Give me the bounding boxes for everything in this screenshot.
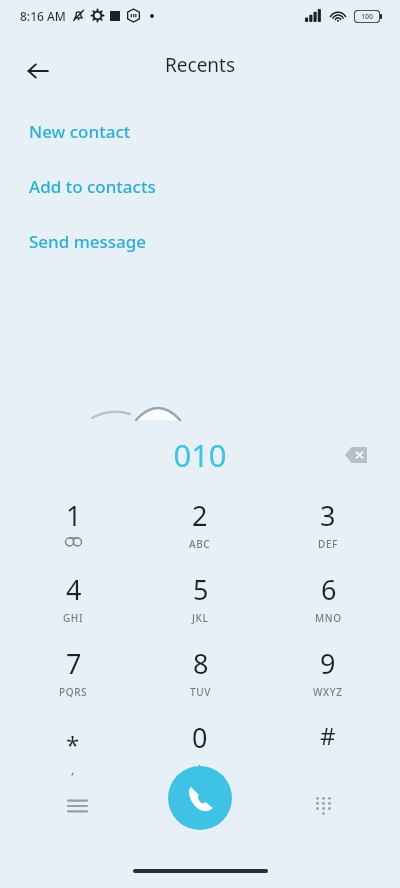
button[interactable]: * (18, 714, 128, 788)
staticText: 9 (320, 645, 336, 682)
button[interactable]: Backspace (336, 435, 376, 475)
button[interactable]: 3 (273, 492, 383, 566)
staticText: 1 (66, 497, 82, 534)
button[interactable]: 9 (273, 640, 383, 714)
button[interactable]: 5 (145, 566, 255, 640)
staticText: 2 (192, 497, 208, 534)
staticText: PQRS (59, 685, 88, 699)
staticText: + (196, 759, 204, 775)
staticText: Recents (165, 52, 236, 78)
staticText: * (66, 728, 80, 761)
staticText: 5 (193, 571, 209, 608)
staticText: 3 (320, 497, 336, 534)
staticText: 4 (66, 571, 82, 608)
staticText: New contact (29, 120, 131, 143)
staticText: 0 (192, 719, 208, 756)
button[interactable]: 8 (145, 640, 255, 714)
staticText: 100 (361, 12, 374, 22)
button[interactable]: Call log (55, 784, 99, 828)
button[interactable]: 0 (145, 714, 255, 788)
staticText: 8 (193, 645, 209, 682)
button[interactable]: 1 (18, 492, 128, 566)
staticText: 7 (66, 645, 82, 682)
button[interactable]: Add to contacts (0, 159, 400, 214)
button[interactable]: Send message (0, 214, 400, 269)
button[interactable]: Back (14, 47, 62, 95)
button[interactable]: 7 (18, 640, 128, 714)
button[interactable]: New contact (0, 104, 400, 159)
staticText: DEF (318, 537, 338, 551)
staticText: ABC (189, 537, 211, 551)
button[interactable]: Call (168, 766, 232, 830)
staticText: Add to contacts (29, 175, 156, 198)
staticText: Send message (29, 230, 147, 253)
staticText: GHI (63, 611, 84, 625)
button[interactable]: 2 (145, 492, 255, 566)
button[interactable]: Dialpad (301, 784, 345, 828)
button[interactable]: # (273, 714, 383, 788)
staticText: TUV (190, 685, 211, 699)
staticText: 6 (321, 571, 337, 608)
staticText: # (320, 719, 336, 752)
staticText: 010 (173, 434, 227, 476)
staticText: MNO (315, 611, 342, 625)
button[interactable]: 4 (18, 566, 128, 640)
staticText: 8:16 AM (20, 8, 66, 24)
staticText: JKL (192, 611, 209, 625)
staticText: WXYZ (313, 685, 343, 699)
staticText: , (71, 761, 75, 777)
button[interactable]: 6 (273, 566, 383, 640)
